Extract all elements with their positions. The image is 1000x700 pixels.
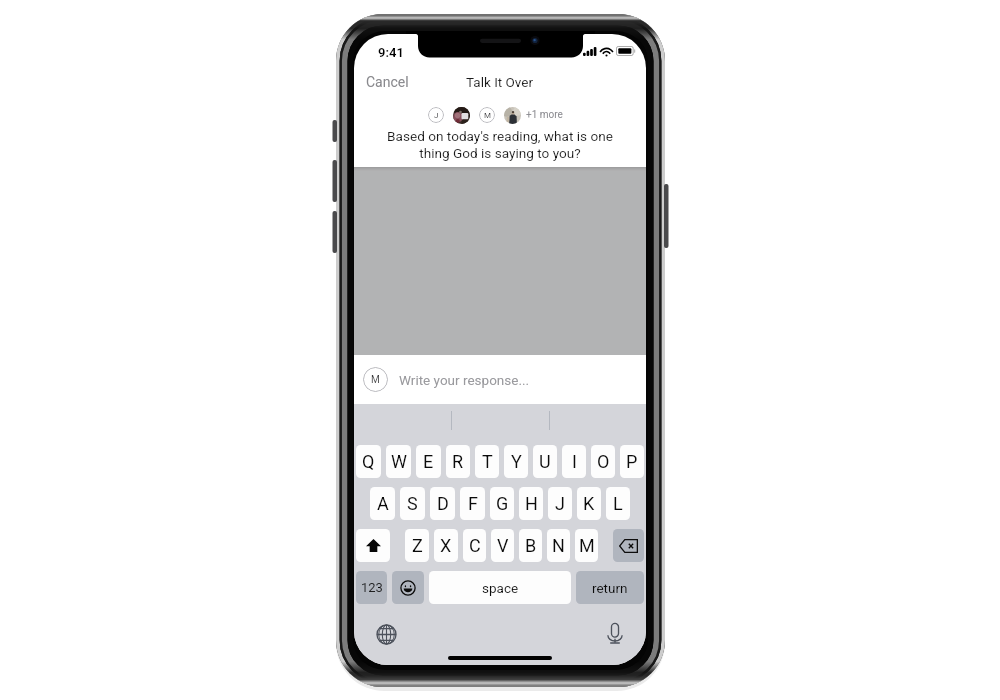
staticText: W — [391, 451, 407, 472]
staticText: M — [371, 374, 380, 386]
staticText: G — [496, 493, 509, 514]
staticText: Based on today's reading, what is one th… — [376, 128, 624, 162]
staticText: space — [482, 580, 519, 596]
staticText: P — [626, 451, 638, 472]
button[interactable]: Z — [405, 529, 429, 562]
staticText: 9:41 — [378, 45, 404, 60]
staticText: M — [579, 535, 595, 556]
staticText: F — [468, 493, 478, 514]
button[interactable]: Change keyboard language — [373, 621, 399, 647]
button[interactable]: V — [491, 529, 514, 562]
staticText: E — [423, 451, 434, 472]
button[interactable]: O — [591, 445, 615, 478]
staticText: L — [613, 493, 623, 514]
button[interactable]: R — [446, 445, 470, 478]
staticText: Q — [362, 451, 375, 472]
button[interactable]: A — [370, 487, 395, 520]
button[interactable]: I — [562, 445, 586, 478]
button[interactable]: Cancel — [354, 68, 421, 96]
staticText: Talk It Over — [466, 74, 534, 90]
button[interactable]: G — [490, 487, 514, 520]
staticText: U — [539, 451, 551, 472]
button[interactable]: K — [577, 487, 601, 520]
button[interactable]: U — [533, 445, 557, 478]
staticText: I — [572, 451, 577, 472]
button[interactable]: S — [400, 487, 425, 520]
button[interactable]: Y — [504, 445, 528, 478]
staticText: D — [437, 493, 449, 514]
button[interactable]: C — [463, 529, 486, 562]
button[interactable]: L — [606, 487, 630, 520]
button[interactable]: E — [416, 445, 441, 478]
button[interactable]: 123 — [356, 571, 387, 604]
staticText: R — [452, 451, 464, 472]
staticText: C — [469, 535, 481, 556]
staticText: N — [552, 535, 565, 556]
button[interactable]: N — [547, 529, 570, 562]
staticText: B — [525, 535, 537, 556]
staticText: O — [597, 451, 610, 472]
staticText: V — [497, 535, 509, 556]
button[interactable]: D — [430, 487, 455, 520]
button[interactable]: return — [576, 571, 644, 604]
staticText: X — [440, 535, 452, 556]
staticText: T — [482, 451, 493, 472]
staticText: Z — [412, 535, 423, 556]
button[interactable]: Dictation — [602, 621, 628, 647]
staticText: M — [484, 111, 491, 120]
staticText: K — [583, 493, 595, 514]
staticText: Y — [511, 451, 522, 472]
staticText: Write your response... — [399, 372, 530, 388]
staticText: S — [407, 493, 418, 514]
staticText: return — [592, 580, 628, 596]
button[interactable]: P — [620, 445, 644, 478]
button[interactable]: X — [434, 529, 458, 562]
button[interactable]: T — [475, 445, 499, 478]
button[interactable]: J — [548, 487, 572, 520]
button[interactable]: M — [575, 529, 598, 562]
button[interactable]: Q — [356, 445, 381, 478]
button[interactable]: space — [429, 571, 571, 604]
button[interactable]: Shift — [356, 529, 390, 562]
staticText: H — [525, 493, 538, 514]
button[interactable]: J — [428, 107, 444, 123]
button[interactable]: W — [386, 445, 411, 478]
staticText: J — [555, 493, 565, 514]
button[interactable]: M — [354, 355, 646, 404]
button[interactable]: Participant avatar — [453, 107, 470, 124]
button[interactable]: Participant avatar — [504, 107, 521, 124]
button[interactable]: B — [519, 529, 542, 562]
staticText: +1 more — [526, 109, 563, 121]
staticText: J — [434, 111, 439, 120]
staticText: 123 — [361, 580, 383, 595]
button[interactable]: F — [460, 487, 485, 520]
staticText: Cancel — [366, 74, 409, 90]
button[interactable]: M — [479, 107, 495, 123]
button[interactable]: H — [519, 487, 543, 520]
button[interactable]: Backspace — [613, 529, 644, 562]
staticText: A — [377, 493, 389, 514]
button[interactable]: Emoji — [392, 571, 424, 604]
